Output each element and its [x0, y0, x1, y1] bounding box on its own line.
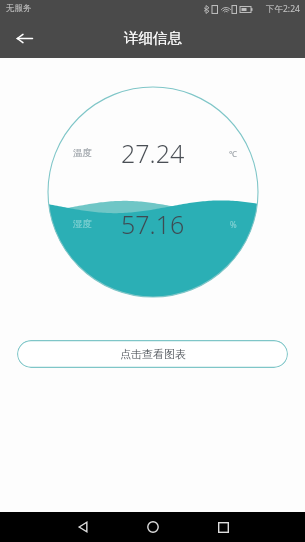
staticText: 下午2:24 — [266, 3, 300, 15]
staticText: 57.16 — [121, 207, 185, 241]
staticText: % — [230, 219, 237, 230]
button[interactable]: Recent apps — [200, 512, 246, 542]
staticText: 温度 — [73, 147, 92, 159]
button[interactable]: 点击查看图表 — [17, 340, 288, 368]
staticText: 湿度 — [73, 218, 92, 230]
staticText: 详细信息 — [124, 29, 182, 47]
staticText: 点击查看图表 — [120, 347, 186, 361]
staticText: ℃ — [229, 148, 237, 159]
button[interactable]: Back — [60, 512, 106, 542]
staticText: 无服务 — [6, 3, 32, 14]
button[interactable]: Back — [6, 20, 42, 56]
button[interactable]: Home — [130, 512, 176, 542]
staticText: 27.24 — [121, 136, 185, 170]
